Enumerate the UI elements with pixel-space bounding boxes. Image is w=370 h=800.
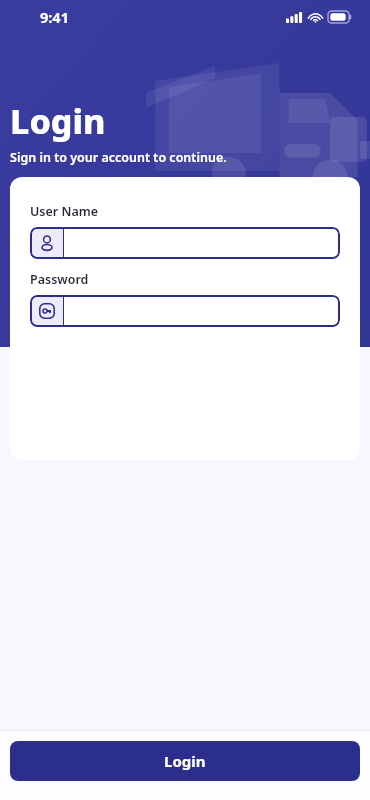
staticText: Login <box>164 751 206 771</box>
staticText: User Name <box>30 203 99 220</box>
staticText: Sign in to your account to continue. <box>10 149 227 166</box>
button[interactable]: User name <box>30 227 340 259</box>
staticText: 9:41 <box>40 7 69 27</box>
other: User name <box>38 234 56 252</box>
other: Password <box>38 302 56 320</box>
staticText: Password <box>30 271 89 288</box>
button[interactable]: Password <box>30 295 340 327</box>
staticText: Login <box>10 98 106 144</box>
button[interactable]: Login <box>10 741 360 781</box>
